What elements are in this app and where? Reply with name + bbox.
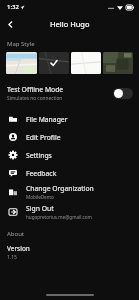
button[interactable]: File Manager [0,110,139,128]
button[interactable]: Test Offline Mode [0,83,139,104]
button[interactable]: Map style 4 [103,52,133,74]
button[interactable]: Map style 1 [6,52,37,74]
staticText: Hello Hugo [50,19,90,29]
button[interactable]: Feedback [0,164,139,182]
staticText: Edit Profile [26,133,61,142]
button[interactable]: Back [0,14,20,34]
staticText: hugopretorius.me@gmail.com [26,214,92,220]
staticText: Simulates no connection [7,95,63,102]
staticText: 1.15 [7,254,17,261]
button[interactable]: Map style 3 [71,52,101,74]
staticText: File Manager [26,115,68,124]
button[interactable]: Change Organization [0,182,139,202]
staticText: Sign Out [26,204,54,213]
staticText: 1:32 [7,3,19,11]
button[interactable]: Map style 2 [39,52,69,74]
staticText: Version [7,244,30,253]
button[interactable]: Sign Out [0,202,139,222]
staticText: Change Organization [26,184,94,193]
button[interactable]: Edit Profile [0,128,139,146]
staticText: About [7,230,25,238]
staticText: Settings [26,151,52,160]
staticText: Feedback [26,169,57,178]
staticText: Map Style [7,40,35,48]
staticText: MobileDemo [26,194,54,200]
staticText: Test Offline Mode [7,85,64,94]
button[interactable]: Settings [0,146,139,164]
